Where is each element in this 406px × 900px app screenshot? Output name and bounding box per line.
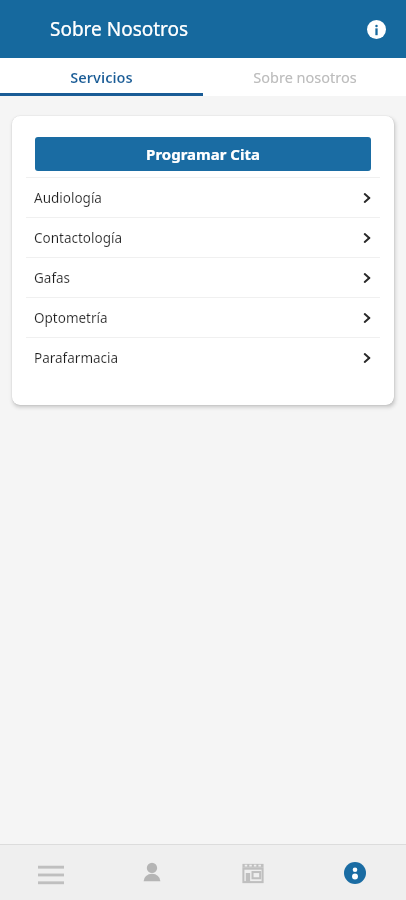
button[interactable]: Cuenta [304, 845, 406, 900]
button[interactable]: Tienda [202, 845, 304, 900]
staticText: Sobre Nosotros [50, 16, 189, 42]
button[interactable]: Parafarmacia [12, 338, 394, 377]
button[interactable]: Optometría [12, 298, 394, 337]
button[interactable]: Información [360, 13, 392, 45]
button[interactable]: Programar Cita [35, 137, 371, 171]
button[interactable]: Menú [0, 845, 101, 900]
staticText: Parafarmacia [34, 349, 119, 367]
button[interactable]: Servicios [0, 58, 203, 96]
button[interactable]: Gafas [12, 258, 394, 297]
button[interactable]: Contactología [12, 218, 394, 257]
staticText: Audiología [34, 189, 102, 207]
staticText: Sobre nosotros [253, 67, 357, 87]
staticText: Contactología [34, 229, 123, 247]
staticText: Gafas [34, 269, 71, 287]
button[interactable]: Sobre nosotros [203, 58, 406, 96]
staticText: Programar Cita [146, 144, 260, 164]
button[interactable]: Audiología [12, 178, 394, 217]
button[interactable]: Perfil [101, 845, 202, 900]
staticText: Servicios [70, 67, 133, 87]
staticText: Optometría [34, 309, 108, 327]
